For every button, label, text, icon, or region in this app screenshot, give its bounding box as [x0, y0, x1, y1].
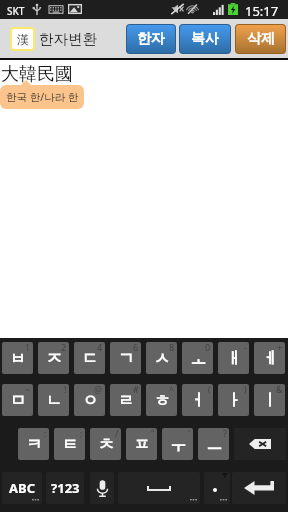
button[interactable]: " — [126, 428, 157, 460]
button[interactable]: ; — [54, 428, 85, 460]
button[interactable]: 복사 — [180, 25, 230, 53]
staticText: ㅌ — [62, 435, 78, 455]
staticText: ^ — [169, 384, 175, 395]
staticText: + — [277, 342, 283, 353]
staticText: ㅁ — [10, 391, 26, 411]
button[interactable] — [204, 472, 230, 504]
staticText: 漢 — [17, 32, 29, 47]
staticText: 한자 — [137, 30, 165, 48]
staticText: ㅇ — [82, 391, 98, 411]
button[interactable]: - — [218, 342, 249, 374]
button[interactable]: ~ — [2, 384, 33, 416]
staticText: " — [151, 428, 155, 439]
staticText: 한자변환 — [39, 30, 97, 48]
button[interactable]: 6 — [110, 342, 141, 374]
button[interactable]: App icon — [12, 29, 33, 49]
button[interactable]: 삭제 — [236, 25, 285, 53]
staticText: : — [44, 428, 47, 439]
staticText: ㅓ — [190, 391, 206, 411]
button[interactable]: + — [254, 342, 285, 374]
staticText: 삭제 — [247, 30, 275, 48]
button[interactable]: 8 — [146, 342, 177, 374]
staticText: 0 — [205, 342, 211, 353]
staticText: ㅈ — [46, 349, 62, 369]
staticText: 大韓民國 — [1, 63, 73, 86]
staticText: ㅗ — [190, 349, 206, 369]
staticText: ㄹ — [118, 391, 134, 411]
staticText: 8 — [169, 342, 175, 353]
button[interactable]: ^ — [146, 384, 177, 416]
button[interactable]: Enter — [232, 472, 286, 504]
staticText: ㅂ — [10, 349, 26, 369]
button[interactable]: ? — [198, 428, 229, 460]
staticText: 2 — [61, 342, 67, 353]
staticText: / — [115, 428, 119, 439]
button[interactable]: ! — [38, 384, 69, 416]
staticText: ㅋ — [26, 435, 42, 455]
staticText: ㅐ — [226, 349, 242, 369]
button[interactable]: 0 — [182, 342, 213, 374]
button[interactable]: 1 — [2, 342, 33, 374]
button[interactable]: @ — [74, 384, 105, 416]
staticText: - — [244, 342, 247, 353]
button[interactable]: ( — [182, 384, 213, 416]
staticText: ABC — [9, 479, 35, 497]
button[interactable]: ABC — [2, 472, 42, 504]
staticText: ? — [223, 428, 227, 439]
button[interactable]: 2 — [38, 342, 69, 374]
staticText: ㅍ — [134, 435, 150, 455]
staticText: ㅏ — [226, 391, 242, 411]
staticText: ㅔ — [262, 349, 278, 369]
staticText: & — [276, 384, 283, 395]
staticText: ?123 — [51, 479, 80, 497]
button[interactable]: ?123 — [46, 472, 84, 504]
button[interactable]: & — [254, 384, 285, 416]
staticText: 1 — [25, 342, 31, 353]
staticText: 4 — [97, 342, 103, 353]
staticText: ㄷ — [82, 349, 98, 369]
button[interactable]: / — [90, 428, 121, 460]
staticText: ㅊ — [98, 435, 114, 455]
staticText: ) — [244, 384, 247, 395]
staticText: ; — [80, 428, 83, 439]
staticText: 복사 — [191, 30, 219, 48]
button[interactable]: Space — [118, 472, 200, 504]
button[interactable]: Backspace — [234, 428, 286, 460]
button[interactable]: 한자 — [127, 25, 175, 53]
staticText: 15:17 — [245, 2, 279, 20]
staticText: ㅣ — [262, 391, 278, 411]
staticText: ( — [208, 384, 211, 395]
button[interactable]: : — [18, 428, 49, 460]
staticText: ㅎ — [154, 391, 170, 411]
button[interactable]: 4 — [74, 342, 105, 374]
staticText: ㅡ — [206, 435, 222, 455]
staticText: # — [133, 384, 139, 395]
staticText: ' — [188, 428, 191, 439]
staticText: ㅅ — [154, 349, 170, 369]
staticText: ㄱ — [118, 349, 134, 369]
button[interactable]: # — [110, 384, 141, 416]
staticText: ㄴ — [46, 391, 62, 411]
staticText: 한국 한/나라 한 — [6, 90, 79, 104]
staticText: ! — [64, 384, 67, 395]
staticText: ㅜ — [170, 435, 186, 455]
staticText: ~ — [25, 384, 31, 395]
button[interactable]: Voice input — [90, 472, 114, 504]
staticText: 6 — [133, 342, 139, 353]
staticText: SKT — [7, 4, 25, 18]
staticText: @ — [94, 384, 103, 395]
button[interactable]: ' — [162, 428, 193, 460]
button[interactable]: ) — [218, 384, 249, 416]
